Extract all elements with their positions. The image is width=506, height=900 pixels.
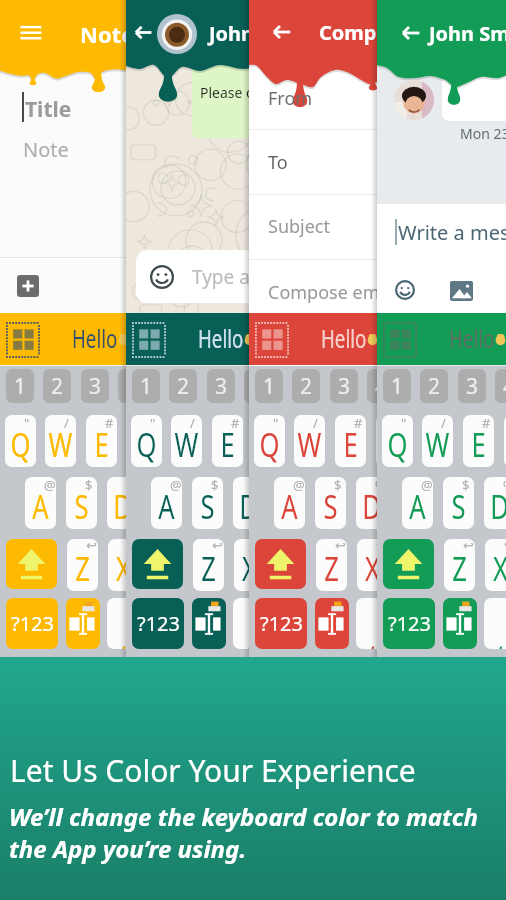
button[interactable]: V (438, 539, 469, 591)
button[interactable]: 6 (319, 369, 347, 403)
button[interactable]: H (478, 477, 506, 529)
button[interactable]: W (422, 415, 453, 467)
button[interactable]: T (294, 415, 325, 467)
button[interactable]: U (249, 415, 280, 467)
button[interactable]: Z (193, 539, 224, 591)
button[interactable]: W (45, 415, 76, 467)
button[interactable]: ?123 (383, 598, 435, 649)
button[interactable]: 3 (81, 369, 109, 403)
button[interactable]: ?123 (255, 598, 307, 649)
button[interactable]: O (456, 415, 487, 467)
button[interactable]: Menu (18, 22, 43, 42)
button[interactable]: W (294, 415, 325, 467)
button[interactable]: Y (457, 415, 488, 467)
button[interactable]: F (274, 477, 305, 529)
button[interactable]: U (375, 415, 406, 467)
button[interactable]: V (315, 539, 346, 591)
button[interactable]: 1 (6, 369, 34, 403)
button[interactable]: Q (5, 415, 36, 467)
button[interactable]: R (253, 415, 284, 467)
button[interactable] (443, 598, 477, 649)
button[interactable] (66, 598, 100, 649)
button[interactable]: 4 (244, 369, 272, 403)
button[interactable]: H (355, 477, 386, 529)
button[interactable]: X (234, 539, 265, 591)
button[interactable]: E (86, 415, 117, 467)
button[interactable]: 2 (420, 369, 448, 403)
button[interactable]: A (151, 477, 182, 529)
button[interactable]: 3 (458, 369, 486, 403)
button[interactable]: Emoji (150, 265, 174, 289)
button[interactable]: E (212, 415, 243, 467)
button[interactable]: X (357, 539, 388, 591)
button[interactable]: , (107, 598, 138, 649)
button[interactable]: K (310, 477, 341, 529)
button[interactable]: 1 (383, 369, 411, 403)
button[interactable]: Attach image (450, 281, 473, 301)
button[interactable] (274, 598, 394, 649)
button[interactable]: 9 (431, 369, 459, 403)
button[interactable]: 4 (495, 369, 506, 403)
button[interactable]: Keyboard themes (255, 322, 289, 358)
button[interactable]: 7 (356, 369, 384, 403)
button[interactable]: Z (316, 539, 347, 591)
button[interactable]: I (290, 415, 321, 467)
button[interactable] (148, 598, 268, 649)
button[interactable] (255, 539, 306, 589)
button[interactable]: Add note (17, 275, 39, 297)
button[interactable]: J (270, 477, 301, 529)
button[interactable]: L (351, 477, 382, 529)
button[interactable]: L (477, 477, 506, 529)
button[interactable]: Z (444, 539, 475, 591)
button[interactable] (6, 539, 57, 589)
button[interactable]: Back (272, 22, 292, 42)
button[interactable] (383, 539, 434, 589)
button[interactable]: 4 (118, 369, 146, 403)
button[interactable]: F (148, 477, 179, 529)
button[interactable] (397, 598, 506, 649)
button[interactable]: ?123 (132, 598, 184, 649)
button[interactable]: Keyboard themes (6, 322, 40, 358)
button[interactable]: 5 (281, 369, 309, 403)
button[interactable]: F (397, 477, 428, 529)
button[interactable]: 1 (132, 369, 160, 403)
button[interactable]: 3 (207, 369, 235, 403)
button[interactable]: Emoji (395, 280, 415, 300)
button[interactable]: W (171, 415, 202, 467)
button[interactable]: 9 (305, 369, 333, 403)
button[interactable]: 5 (404, 369, 432, 403)
button[interactable]: S (315, 477, 346, 529)
button[interactable]: P (371, 415, 402, 467)
button[interactable]: A (25, 477, 56, 529)
button[interactable]: G (188, 477, 219, 529)
button[interactable]: 4 (367, 369, 395, 403)
button[interactable]: P (497, 415, 506, 467)
button[interactable]: , (233, 598, 264, 649)
button[interactable]: 0 (468, 369, 496, 403)
button[interactable]: D (107, 477, 138, 529)
button[interactable]: M (311, 539, 342, 591)
button[interactable]: 6 (442, 369, 470, 403)
button[interactable]: R (504, 415, 506, 467)
button[interactable]: C (274, 539, 305, 591)
button[interactable]: V (189, 539, 220, 591)
button[interactable]: A (274, 477, 305, 529)
button[interactable]: 0 (342, 369, 370, 403)
button[interactable]: X (108, 539, 139, 591)
button[interactable]: B (230, 539, 261, 591)
button[interactable]: Keyboard themes (132, 322, 166, 358)
button[interactable]: 8 (394, 369, 422, 403)
button[interactable]: 2 (292, 369, 320, 403)
button[interactable]: S (66, 477, 97, 529)
button[interactable]: 3 (330, 369, 358, 403)
button[interactable]: G (437, 477, 468, 529)
button[interactable] (315, 598, 349, 649)
button[interactable]: X (485, 539, 506, 591)
button[interactable]: Q (254, 415, 285, 467)
button[interactable]: R (376, 415, 407, 467)
button[interactable]: E (335, 415, 366, 467)
button[interactable]: M (437, 539, 468, 591)
button[interactable]: T (168, 415, 199, 467)
button[interactable]: C (397, 539, 428, 591)
button[interactable]: G (314, 477, 345, 529)
